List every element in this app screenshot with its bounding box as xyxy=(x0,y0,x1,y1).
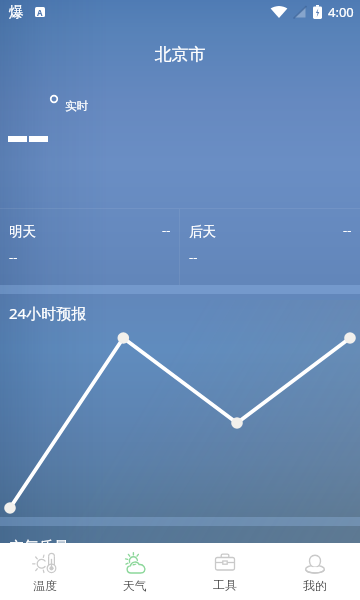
button[interactable]: 明天 xyxy=(0,209,179,285)
staticText: -- xyxy=(9,248,18,266)
staticText: 实时 xyxy=(65,99,88,113)
staticText: -- xyxy=(189,248,198,266)
button[interactable]: 温度 xyxy=(0,543,90,600)
staticText: 明天 xyxy=(9,223,36,240)
staticText: 工具 xyxy=(213,577,237,592)
button[interactable]: 天气 xyxy=(90,543,180,600)
staticText: A xyxy=(37,7,43,17)
staticText: 4:00 xyxy=(328,3,354,21)
staticText: 天气 xyxy=(123,578,147,593)
staticText: 24小时预报 xyxy=(9,303,87,323)
staticText: 后天 xyxy=(189,223,216,240)
staticText: -- xyxy=(162,221,171,239)
staticText: 爆 xyxy=(9,3,24,22)
button[interactable]: 工具 xyxy=(180,543,270,600)
staticText: 北京市 xyxy=(0,44,360,65)
staticText: -- xyxy=(343,221,352,239)
button[interactable]: 后天 xyxy=(180,209,360,285)
staticText: 温度 xyxy=(33,578,57,593)
staticText: 空气质量 xyxy=(9,538,69,557)
button[interactable]: 我的 xyxy=(270,543,360,600)
staticText: 我的 xyxy=(303,578,327,593)
